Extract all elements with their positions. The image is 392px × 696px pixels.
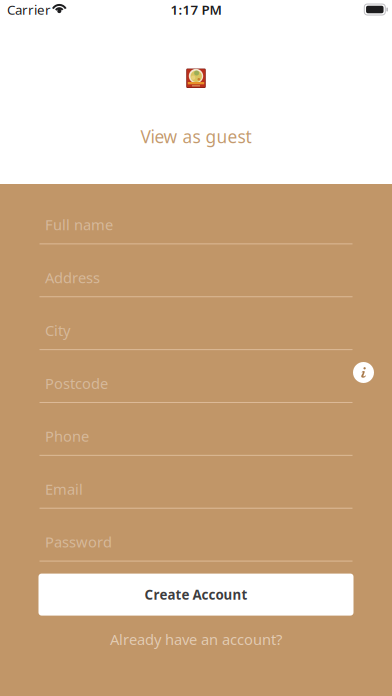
button[interactable]: Password (39, 509, 352, 562)
button[interactable]: Already have an account? (110, 630, 282, 649)
button[interactable]: Phone (39, 403, 352, 456)
button[interactable]: Create Account (38, 574, 353, 616)
button[interactable]: More information about postcode (353, 362, 374, 383)
staticText: Password (45, 532, 112, 552)
staticText: Email (45, 479, 83, 499)
staticText: View as guest (140, 125, 251, 148)
button[interactable]: View as guest (140, 125, 251, 148)
staticText: Address (45, 268, 100, 287)
staticText: City (45, 321, 70, 340)
button[interactable]: Address (39, 244, 352, 297)
staticText: 1:17 PM (170, 1, 221, 18)
staticText: Postcode (45, 373, 108, 393)
button[interactable]: City (39, 297, 352, 350)
button[interactable]: Full name (39, 191, 352, 244)
staticText: Create Account (144, 586, 247, 603)
staticText: Phone (45, 426, 89, 446)
staticText: Full name (45, 215, 113, 234)
button[interactable]: Postcode (39, 350, 352, 403)
button[interactable]: Email (39, 456, 352, 509)
staticText: Carrier (7, 1, 51, 18)
staticText: Already have an account? (110, 630, 282, 649)
